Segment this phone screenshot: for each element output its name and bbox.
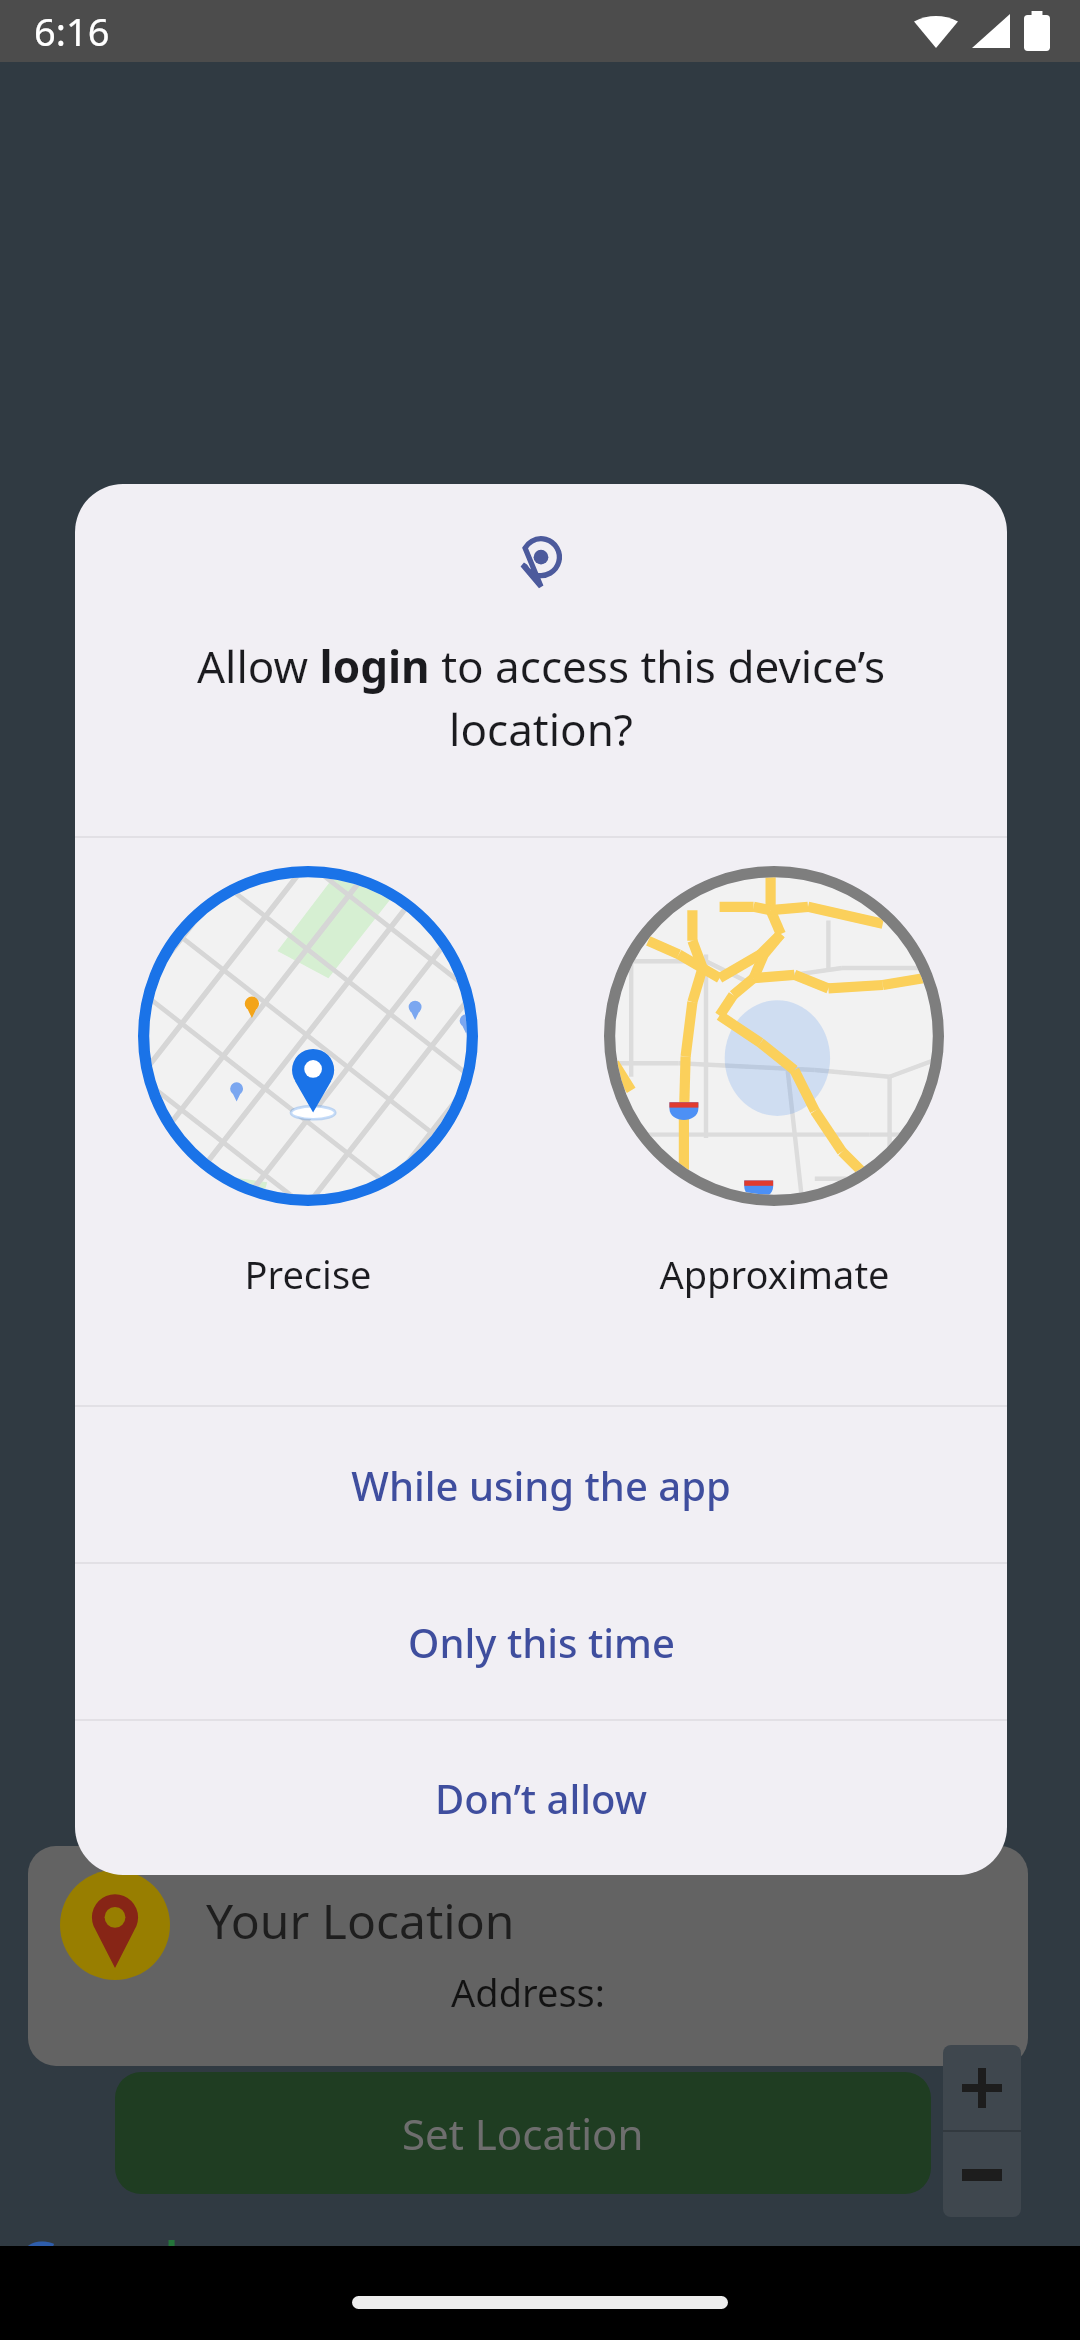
- staticText: Set Location: [402, 2105, 644, 2162]
- button[interactable]: Zoom out: [943, 2132, 1021, 2217]
- staticText: o: [94, 2222, 129, 2298]
- button[interactable]: Don’t allow: [75, 1721, 1007, 1875]
- staticText: o: [59, 2222, 94, 2298]
- staticText: Don’t allow: [435, 1771, 647, 1825]
- staticText: Precise: [244, 1248, 372, 1300]
- button[interactable]: Only this time: [75, 1564, 1007, 1719]
- staticText: While using the app: [351, 1458, 731, 1512]
- staticText: e: [180, 2222, 213, 2298]
- button[interactable]: Precise: [75, 838, 541, 1405]
- staticText: 6:16: [34, 5, 110, 57]
- staticText: Approximate: [659, 1248, 890, 1300]
- staticText: Address:: [451, 1966, 605, 2018]
- staticText: Only this time: [408, 1615, 675, 1669]
- button[interactable]: Set Location: [115, 2072, 931, 2194]
- button[interactable]: Approximate: [541, 838, 1007, 1405]
- button[interactable]: While using the app: [75, 1407, 1007, 1562]
- staticText: Your Location: [206, 1888, 515, 1953]
- staticText: Allow login to access this device’s loca…: [111, 636, 971, 759]
- staticText: G: [18, 2222, 59, 2298]
- staticText: l: [164, 2222, 180, 2298]
- button[interactable]: Zoom in: [943, 2045, 1021, 2130]
- staticText: g: [129, 2222, 164, 2298]
